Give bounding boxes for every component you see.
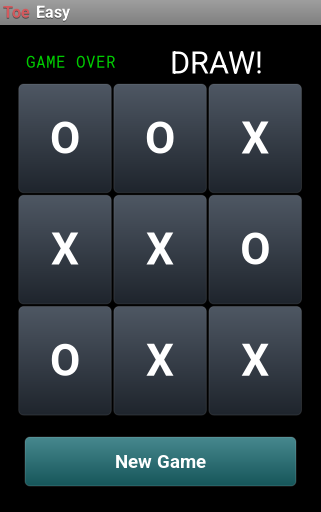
staticText: Toe [3, 3, 30, 22]
staticText: O [50, 113, 80, 164]
button[interactable]: Square marked O [19, 306, 111, 415]
staticText: O [145, 113, 175, 164]
button[interactable]: Square marked O [114, 84, 206, 193]
staticText: O [50, 335, 80, 387]
button[interactable]: Square marked X [19, 195, 111, 304]
staticText: X [241, 335, 269, 387]
staticText: New Game [115, 451, 206, 472]
staticText: X [146, 224, 174, 275]
staticText: X [146, 335, 174, 387]
button[interactable]: New Game [25, 437, 296, 486]
staticText: Toe [3, 4, 30, 23]
button[interactable]: Square marked X [209, 84, 301, 193]
button[interactable]: Square marked X [209, 306, 301, 415]
staticText: Easy [36, 3, 70, 22]
staticText: DRAW! [170, 45, 263, 81]
button[interactable]: Square marked O [19, 84, 111, 193]
staticText: GAME OVER [26, 51, 116, 72]
button[interactable]: Square marked X [114, 306, 206, 415]
staticText: Easy [36, 4, 70, 23]
staticText: X [51, 224, 79, 275]
staticText: X [241, 113, 269, 164]
staticText: O [240, 224, 270, 275]
button[interactable]: Square marked O [209, 195, 301, 304]
button[interactable]: Square marked X [114, 195, 206, 304]
